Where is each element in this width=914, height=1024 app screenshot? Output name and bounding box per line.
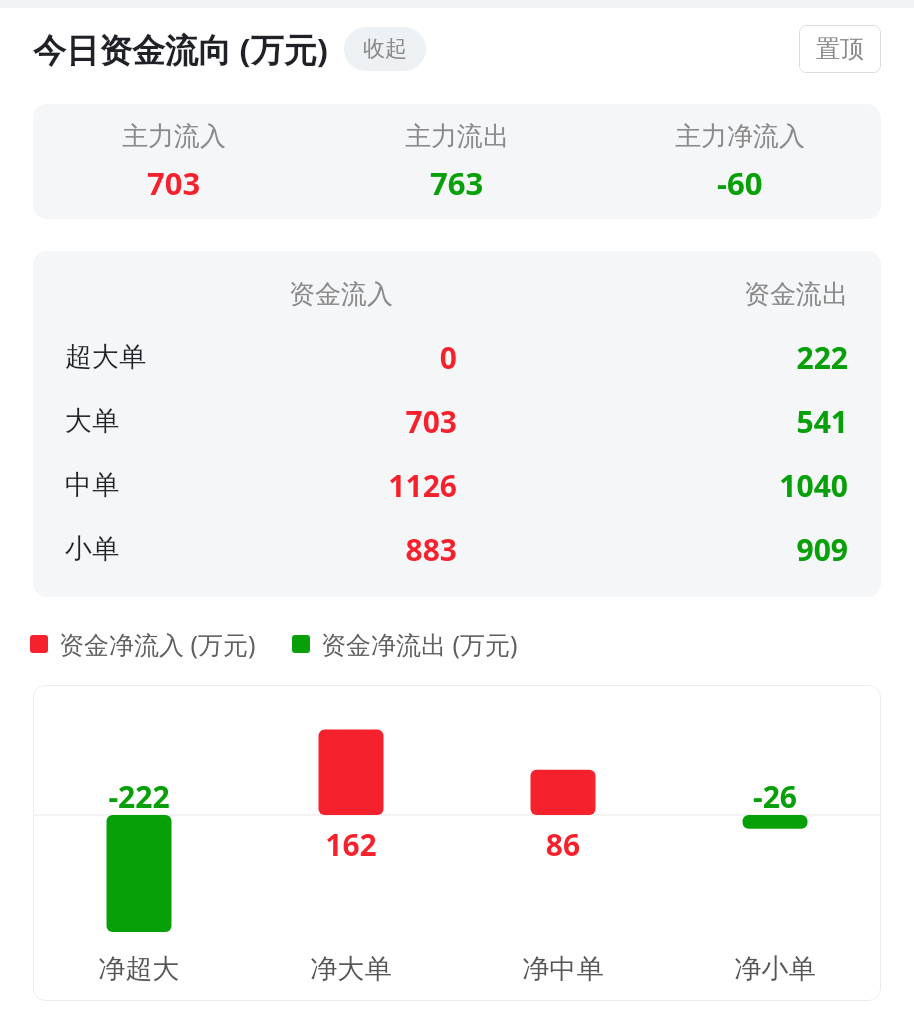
staticText: 资金净流入 (万元) bbox=[59, 627, 256, 661]
staticText: 今日资金流向 (万元) bbox=[33, 27, 328, 72]
button[interactable]: 收起 bbox=[344, 27, 426, 71]
staticText: 置顶 bbox=[816, 34, 864, 64]
staticText: 净小单 bbox=[669, 952, 881, 986]
staticText: -60 bbox=[717, 162, 763, 204]
button[interactable]: 中单 bbox=[33, 453, 881, 517]
staticText: 中单 bbox=[65, 468, 225, 502]
staticText: -222 bbox=[33, 776, 245, 817]
staticText: 541 bbox=[678, 401, 848, 442]
staticText: 222 bbox=[678, 337, 848, 378]
staticText: 86 bbox=[457, 824, 669, 865]
other: 资金净流入图例 bbox=[30, 635, 48, 653]
button[interactable]: -222 bbox=[33, 685, 881, 1001]
button[interactable]: 主力流入 bbox=[33, 104, 881, 219]
button[interactable]: 超大单 bbox=[33, 325, 881, 389]
button[interactable]: 置顶 bbox=[799, 25, 881, 73]
staticText: 主力净流入 bbox=[675, 120, 805, 153]
staticText: 1040 bbox=[678, 465, 848, 506]
staticText: 超大单 bbox=[65, 340, 225, 374]
staticText: 909 bbox=[678, 529, 848, 570]
staticText: 主力流出 bbox=[405, 120, 509, 153]
staticText: 资金净流出 (万元) bbox=[321, 627, 518, 661]
button[interactable]: 大单 bbox=[33, 389, 881, 453]
staticText: 0 bbox=[225, 337, 457, 378]
staticText: 收起 bbox=[363, 35, 407, 63]
staticText: 763 bbox=[430, 162, 484, 204]
staticText: 净大单 bbox=[245, 952, 457, 986]
staticText: 大单 bbox=[65, 404, 225, 438]
staticText: 703 bbox=[147, 162, 201, 204]
button[interactable]: 小单 bbox=[33, 517, 881, 581]
staticText: 小单 bbox=[65, 532, 225, 566]
other: 资金净流出图例 bbox=[292, 635, 310, 653]
staticText: 703 bbox=[225, 401, 457, 442]
staticText: -26 bbox=[669, 776, 881, 817]
staticText: 净超大 bbox=[33, 952, 245, 986]
staticText: 162 bbox=[245, 824, 457, 865]
staticText: 资金流出 bbox=[678, 278, 848, 311]
staticText: 净中单 bbox=[457, 952, 669, 986]
staticText: 883 bbox=[225, 529, 457, 570]
staticText: 1126 bbox=[225, 465, 457, 506]
staticText: 主力流入 bbox=[122, 120, 226, 153]
staticText: 资金流入 bbox=[225, 278, 457, 311]
